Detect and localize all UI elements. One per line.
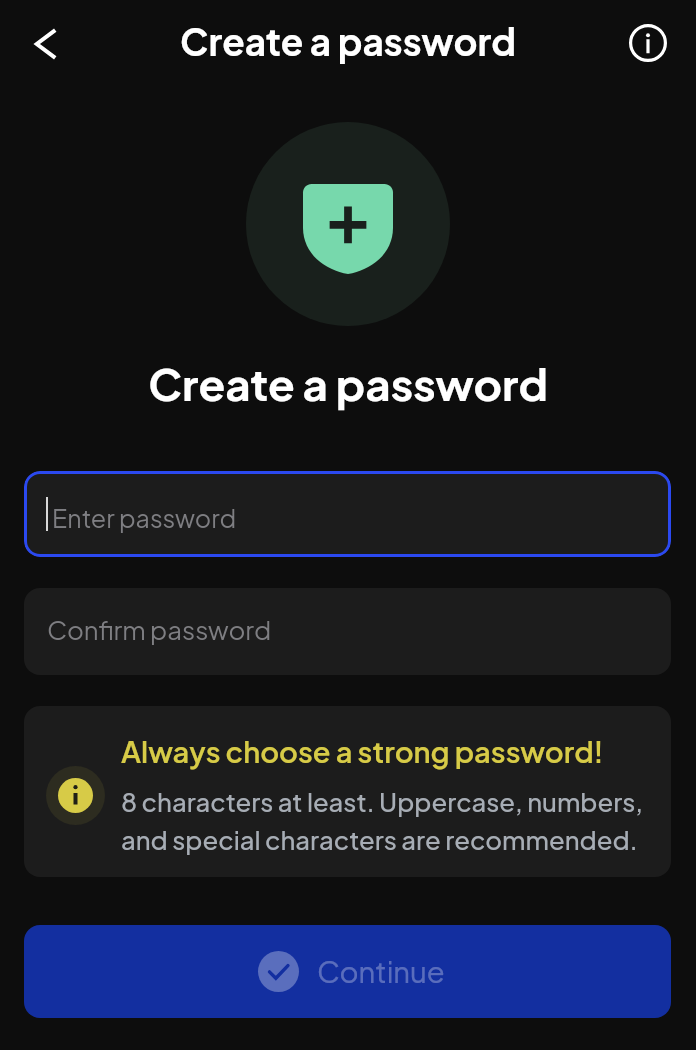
staticText: Create a password (0, 18, 696, 64)
button[interactable]: Confirm password (24, 588, 671, 675)
button[interactable]: Information (617, 12, 679, 74)
button[interactable]: Back (14, 12, 78, 76)
staticText: Create a password (0, 356, 696, 411)
button[interactable]: Enter password (24, 471, 671, 557)
staticText: Enter password (52, 502, 237, 533)
staticText: Continue (317, 953, 445, 990)
staticText: Always choose a strong password! (121, 733, 604, 770)
button[interactable]: Continue (24, 925, 671, 1018)
staticText: Confirm password (47, 613, 272, 646)
staticText: 8 characters at least. Uppercase, number… (121, 785, 643, 856)
